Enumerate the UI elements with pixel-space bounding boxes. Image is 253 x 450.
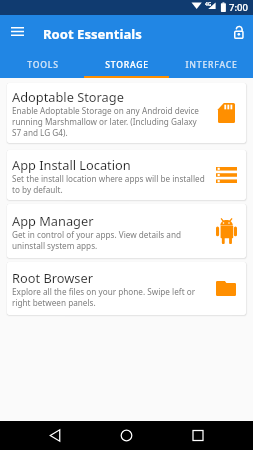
- button[interactable]: Open navigation drawer: [5, 22, 29, 46]
- staticText: Set the install location where apps will…: [12, 173, 205, 184]
- staticText: 7:00: [229, 1, 248, 14]
- staticText: Root Browser: [12, 269, 93, 286]
- button[interactable]: INTERFACE: [169, 52, 253, 78]
- staticText: INTERFACE: [185, 59, 238, 71]
- button[interactable]: STORAGE: [85, 52, 169, 78]
- button[interactable]: TOOLS: [0, 52, 85, 78]
- staticText: TOOLS: [27, 59, 59, 71]
- staticText: Root Essentials: [43, 25, 142, 43]
- button[interactable]: Recent apps: [184, 422, 212, 450]
- staticText: Get in control of your apps. View detail…: [12, 229, 181, 240]
- button[interactable]: App Manager: [7, 204, 246, 258]
- staticText: running Marshmallow or later. (Including…: [12, 116, 197, 127]
- button[interactable]: Back: [41, 422, 69, 450]
- staticText: Enable Adoptable Storage on any Android …: [12, 105, 199, 116]
- staticText: right between panels.: [12, 297, 96, 308]
- staticText: STORAGE: [105, 59, 149, 71]
- button[interactable]: Unlock root access: [224, 21, 250, 47]
- staticText: to by default.: [12, 184, 63, 195]
- staticText: uninstall system apps.: [12, 240, 98, 251]
- staticText: Adoptable Storage: [12, 88, 124, 105]
- button[interactable]: Home: [113, 422, 141, 450]
- staticText: 4G: [205, 1, 212, 8]
- button[interactable]: Root Browser: [7, 262, 246, 315]
- button[interactable]: App Install Location: [7, 150, 246, 200]
- staticText: S7 and LG G4).: [12, 127, 68, 138]
- staticText: App Install Location: [12, 156, 131, 173]
- staticText: App Manager: [12, 212, 94, 229]
- button[interactable]: Adoptable Storage: [7, 83, 246, 143]
- staticText: Explore all the files on your phone. Swi…: [12, 286, 196, 297]
